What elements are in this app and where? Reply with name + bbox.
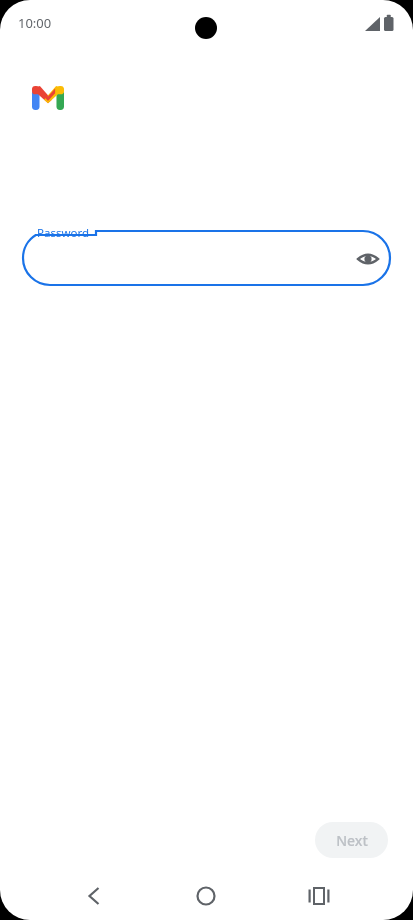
- staticText: Next: [336, 831, 368, 850]
- button[interactable]: Back: [74, 876, 114, 916]
- button[interactable]: Home: [186, 876, 226, 916]
- button[interactable]: Show password: [348, 239, 388, 279]
- button[interactable]: Next: [315, 822, 388, 858]
- staticText: Password: [37, 225, 90, 241]
- staticText: 10:00: [18, 14, 52, 32]
- button[interactable]: Recent apps: [299, 876, 339, 916]
- button[interactable]: [23, 231, 390, 285]
